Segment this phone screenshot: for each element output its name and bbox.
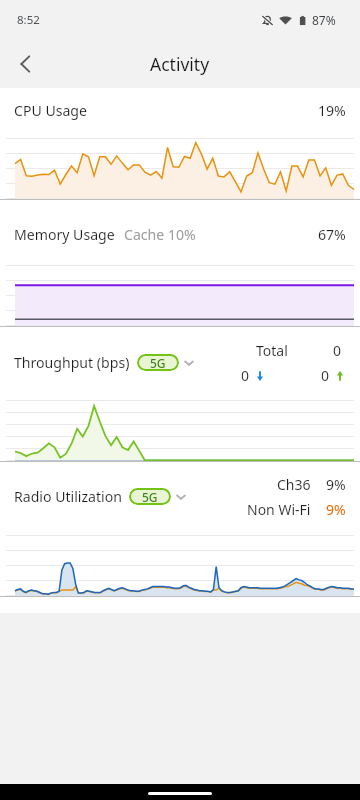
staticText: 5G: [142, 489, 158, 505]
button[interactable]: CPU Usage: [0, 88, 360, 138]
staticText: Memory Usage: [14, 225, 115, 244]
button[interactable]: 5G: [129, 488, 171, 505]
staticText: CPU Usage: [14, 101, 87, 120]
button[interactable]: Change band: [173, 489, 189, 505]
staticText: Non Wi-Fi: [247, 500, 311, 519]
staticText: 19%: [318, 101, 346, 120]
staticText: 9%: [326, 475, 346, 494]
staticText: 67%: [318, 225, 346, 244]
staticText: 5G: [150, 355, 166, 371]
staticText: 87%: [312, 12, 336, 28]
button[interactable]: 5G: [137, 354, 179, 371]
staticText: 8:52: [17, 12, 40, 28]
staticText: Throughput (bps): [14, 353, 130, 372]
button[interactable]: Back: [0, 40, 48, 88]
staticText: Activity: [150, 52, 210, 76]
staticText: Radio Utilization: [14, 487, 122, 506]
staticText: 0: [333, 341, 342, 360]
staticText: Ch36: [277, 475, 311, 494]
staticText: 0: [321, 366, 330, 385]
button[interactable]: Change band: [181, 355, 197, 371]
staticText: Cache 10%: [124, 225, 196, 244]
staticText: 0: [241, 366, 250, 385]
staticText: 9%: [326, 500, 346, 519]
button[interactable]: Memory Usage: [0, 200, 360, 265]
staticText: Total: [256, 341, 288, 360]
